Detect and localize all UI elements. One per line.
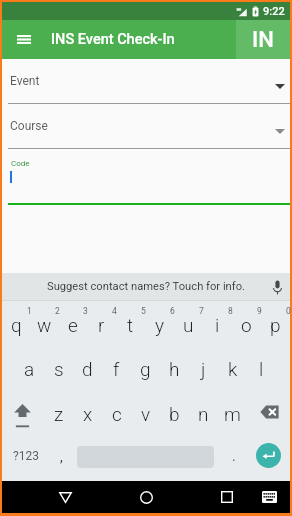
button[interactable]: w [30,301,58,346]
staticText: b [169,403,180,425]
staticText: v [141,403,151,425]
staticText: 7 [199,306,204,316]
staticText: IN [252,27,274,53]
staticText: z [54,403,64,425]
staticText: 6 [170,306,175,316]
button[interactable]: v [131,391,160,436]
staticText: l [259,358,264,380]
staticText: 2 [55,306,60,316]
staticText: e [68,314,78,336]
staticText: Code [11,159,30,168]
staticText: o [241,314,252,336]
button[interactable]: i [203,301,232,346]
staticText: x [83,403,93,425]
button[interactable]: z [44,391,73,436]
staticText: c [112,403,122,425]
button[interactable]: o [232,301,261,346]
button[interactable]: a [15,346,44,391]
button[interactable]: l [247,346,276,391]
staticText: INS Event Check-In [51,31,175,48]
staticText: k [228,358,238,380]
staticText: u [183,314,194,336]
button[interactable]: , [47,436,75,481]
button[interactable]: y [145,301,174,346]
button[interactable]: u [174,301,203,346]
button[interactable]: x [73,391,102,436]
button[interactable]: Backspace [247,391,290,436]
staticText: Event [10,74,40,88]
staticText: 0 [286,306,291,316]
staticText: h [169,358,180,380]
button[interactable]: k [218,346,247,391]
button[interactable]: e [58,301,87,346]
button[interactable]: d [73,346,102,391]
button[interactable]: ?123 [2,436,50,481]
button[interactable]: Home [128,481,164,513]
staticText: d [82,358,93,380]
button[interactable]: c [102,391,131,436]
button[interactable]: . [220,436,248,481]
button[interactable]: Suggest contact names? Touch for info. [2,273,290,300]
staticText: Suggest contact names? Touch for info. [47,280,246,293]
button[interactable]: j [189,346,218,391]
button[interactable]: Course [2,104,290,149]
staticText: 1 [27,306,32,316]
staticText: m [224,403,241,425]
button[interactable]: Voice input [266,276,288,298]
staticText: 3 [83,306,88,316]
button[interactable]: Back [47,481,83,513]
button[interactable]: Shift [2,391,44,436]
button[interactable]: Recent apps [209,481,245,513]
button[interactable]: p [261,301,290,346]
staticText: w [37,314,52,336]
button[interactable]: g [131,346,160,391]
staticText: y [155,314,165,336]
staticText: i [215,314,220,336]
staticText: j [201,358,206,380]
staticText: 5 [141,306,146,316]
staticText: p [270,314,281,336]
staticText: n [198,403,209,425]
button[interactable]: q [2,301,30,346]
button[interactable]: Event [2,59,290,104]
staticText: Course [10,119,48,133]
button[interactable]: r [87,301,116,346]
button[interactable]: m [218,391,247,436]
button[interactable]: b [160,391,189,436]
staticText: 8 [228,306,233,316]
button[interactable]: s [44,346,73,391]
button[interactable]: Open navigation menu [14,20,34,59]
button[interactable]: Enter [256,443,281,468]
staticText: t [127,314,134,336]
button[interactable]: h [160,346,189,391]
staticText: s [54,358,64,380]
button[interactable]: Code [2,149,290,205]
staticText: r [98,314,105,336]
staticText: ?123 [13,449,39,463]
button[interactable]: Hide keyboard [254,482,284,512]
button[interactable]: t [116,301,145,346]
staticText: 9:22 [263,5,285,18]
staticText: , [60,449,63,465]
button[interactable]: f [102,346,131,391]
button[interactable]: IN [236,20,290,59]
staticText: 4 [112,306,117,316]
staticText: q [11,314,22,336]
staticText: g [140,358,151,380]
button[interactable]: n [189,391,218,436]
staticText: f [113,358,120,380]
staticText: . [232,448,236,464]
staticText: 9 [257,306,262,316]
staticText: a [24,358,35,380]
